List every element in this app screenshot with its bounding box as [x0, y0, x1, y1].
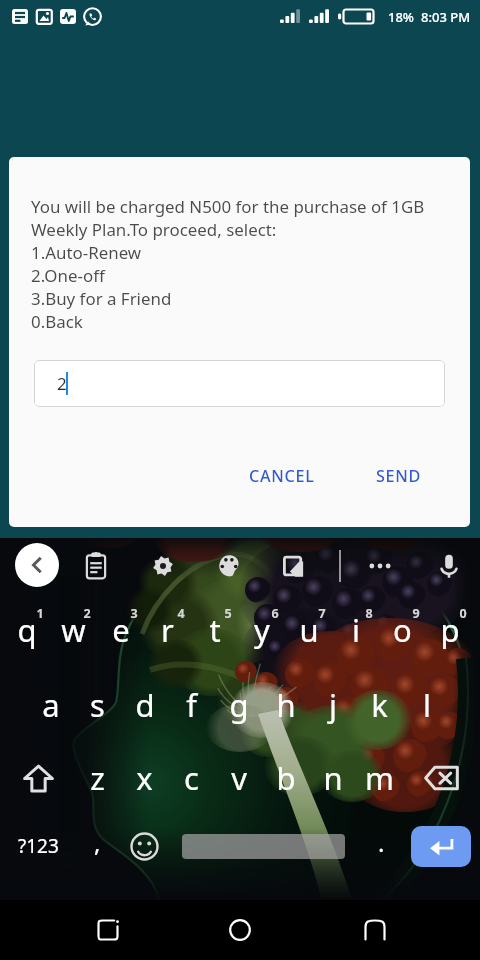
staticText: 1.Auto-Renew: [31, 241, 142, 264]
button[interactable]: d: [121, 680, 168, 730]
button[interactable]: Sticker: [282, 548, 306, 584]
staticText: m: [365, 757, 394, 799]
button[interactable]: .: [360, 822, 402, 870]
button[interactable]: Enter: [411, 826, 471, 867]
staticText: b: [276, 757, 296, 799]
staticText: 8:03 PM: [421, 8, 471, 26]
button[interactable]: Hide keyboard: [15, 543, 59, 587]
button[interactable]: i: [332, 596, 379, 648]
staticText: ?123: [18, 833, 59, 859]
button[interactable]: Voice input: [437, 548, 461, 584]
staticText: 1: [36, 605, 44, 622]
button[interactable]: t: [191, 596, 238, 648]
button[interactable]: j: [309, 680, 356, 730]
staticText: e: [112, 609, 130, 651]
staticText: j: [329, 684, 337, 726]
staticText: g: [229, 684, 249, 726]
staticText: 4: [177, 605, 185, 622]
button[interactable]: n: [309, 753, 356, 803]
button[interactable]: ,: [75, 822, 119, 870]
staticText: 0.Back: [31, 310, 83, 333]
staticText: 8: [365, 605, 373, 622]
staticText: v: [231, 757, 247, 799]
staticText: 3: [130, 605, 138, 622]
staticText: 7: [318, 605, 326, 622]
button[interactable]: ?123: [6, 822, 70, 870]
staticText: a: [42, 684, 60, 726]
button[interactable]: Recents: [84, 906, 132, 954]
button[interactable]: h: [262, 680, 309, 730]
staticText: k: [371, 684, 388, 726]
button[interactable]: Space: [170, 822, 358, 870]
button[interactable]: m: [356, 753, 403, 803]
button[interactable]: e: [97, 596, 144, 648]
button[interactable]: v: [215, 753, 262, 803]
staticText: 5: [224, 605, 232, 622]
staticText: 2: [83, 605, 91, 622]
staticText: y: [254, 609, 270, 651]
button[interactable]: a: [27, 680, 74, 730]
staticText: q: [17, 609, 37, 651]
button[interactable]: k: [356, 680, 403, 730]
button[interactable]: f: [168, 680, 215, 730]
button[interactable]: z: [74, 753, 121, 803]
staticText: n: [323, 757, 343, 799]
button[interactable]: Backspace: [413, 753, 469, 803]
button[interactable]: Theme: [217, 548, 241, 584]
button[interactable]: l: [403, 680, 450, 730]
button[interactable]: u: [285, 596, 332, 648]
button[interactable]: CANCEL: [233, 457, 331, 495]
button[interactable]: b: [262, 753, 309, 803]
staticText: z: [90, 757, 105, 799]
staticText: 2: [57, 372, 67, 395]
staticText: o: [393, 609, 412, 651]
staticText: 18%: [388, 8, 414, 26]
staticText: ,: [94, 826, 101, 859]
button[interactable]: Home: [216, 906, 264, 954]
button[interactable]: r: [144, 596, 191, 648]
button[interactable]: g: [215, 680, 262, 730]
button[interactable]: c: [168, 753, 215, 803]
button[interactable]: More: [368, 548, 392, 584]
staticText: 9: [412, 605, 420, 622]
staticText: 0: [459, 605, 467, 622]
staticText: x: [136, 757, 153, 799]
staticText: u: [299, 609, 319, 651]
button[interactable]: Emoji: [122, 822, 166, 870]
staticText: p: [440, 609, 460, 651]
button[interactable]: x: [121, 753, 168, 803]
staticText: 6: [271, 605, 279, 622]
staticText: r: [161, 609, 174, 651]
button[interactable]: y: [238, 596, 285, 648]
staticText: You will be charged N500 for the purchas…: [31, 195, 425, 218]
button[interactable]: 2: [34, 360, 445, 407]
staticText: t: [209, 609, 221, 651]
button[interactable]: Clipboard: [84, 548, 108, 584]
staticText: w: [61, 609, 86, 651]
staticText: 3.Buy for a Friend: [31, 287, 172, 310]
button[interactable]: o: [379, 596, 426, 648]
staticText: .: [378, 826, 385, 859]
button[interactable]: Shift: [10, 753, 66, 803]
staticText: SEND: [376, 465, 422, 487]
button[interactable]: s: [74, 680, 121, 730]
button[interactable]: w: [50, 596, 97, 648]
staticText: i: [352, 609, 360, 651]
button[interactable]: Settings: [151, 548, 175, 584]
staticText: CANCEL: [249, 465, 315, 487]
button[interactable]: SEND: [360, 457, 438, 495]
button[interactable]: q: [3, 596, 50, 648]
staticText: f: [186, 684, 197, 726]
button[interactable]: Back: [351, 906, 399, 954]
staticText: d: [135, 684, 155, 726]
staticText: s: [90, 684, 105, 726]
staticText: c: [184, 757, 199, 799]
staticText: 2.One-off: [31, 264, 105, 287]
button[interactable]: p: [426, 596, 473, 648]
staticText: l: [423, 684, 431, 726]
staticText: h: [276, 684, 296, 726]
staticText: Weekly Plan.To proceed, select:: [31, 218, 277, 241]
